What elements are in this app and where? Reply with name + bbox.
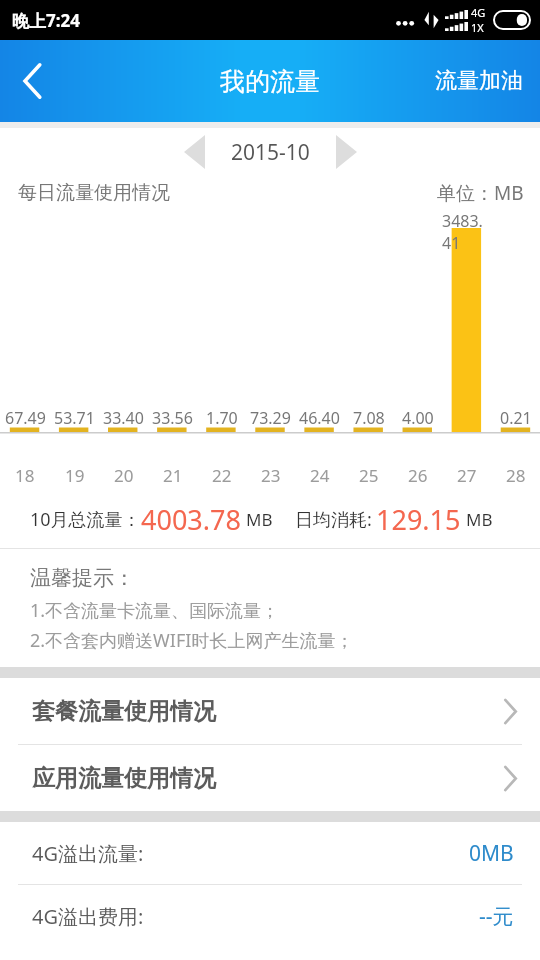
staticText: 4003.78 — [141, 501, 241, 538]
staticText: 23 — [261, 464, 281, 487]
staticText: 我的流量 — [220, 66, 320, 97]
button[interactable]: 下一月 — [324, 129, 368, 175]
staticText: 套餐流量使用情况 — [32, 697, 216, 726]
staticText: 46.40 — [299, 407, 340, 429]
staticText: 4G溢出费用: — [32, 903, 144, 930]
staticText: 19 — [65, 464, 85, 487]
button[interactable]: 返回 — [0, 40, 64, 122]
staticText: 67.49 — [5, 407, 46, 429]
button[interactable]: 套餐流量使用情况 — [0, 678, 540, 744]
staticText: 晚上7:24 — [12, 9, 80, 32]
staticText: 4G溢出流量: — [32, 840, 144, 867]
button[interactable]: 应用流量使用情况 — [0, 745, 540, 811]
staticText: 1X — [471, 20, 484, 35]
staticText: 温馨提示： — [30, 565, 135, 591]
staticText: 18 — [15, 464, 35, 487]
staticText: --元 — [479, 902, 514, 931]
staticText: 7.08 — [353, 407, 385, 429]
staticText: 33.56 — [152, 407, 193, 429]
staticText: 单位：MB — [437, 180, 524, 206]
staticText: 2.不含套内赠送WIFI时长上网产生流量； — [30, 628, 354, 653]
staticText: 21 — [163, 464, 183, 487]
staticText: 2015-10 — [231, 138, 310, 167]
staticText: 20 — [114, 464, 134, 487]
staticText: 28 — [506, 464, 526, 487]
staticText: 3483.41 — [442, 210, 491, 254]
staticText: 每日流量使用情况 — [18, 181, 170, 205]
staticText: 73.29 — [250, 407, 291, 429]
staticText: 4.00 — [402, 407, 434, 429]
staticText: 0.21 — [500, 407, 532, 429]
staticText: 流量加油 — [435, 67, 523, 95]
staticText: 1.70 — [206, 407, 238, 429]
staticText: 33.40 — [103, 407, 144, 429]
staticText: 0MB — [469, 839, 514, 868]
staticText: 26 — [408, 464, 428, 487]
button[interactable]: 流量加油 — [418, 45, 540, 117]
staticText: 53.71 — [54, 407, 95, 429]
staticText: 27 — [457, 464, 477, 487]
staticText: 4G — [471, 5, 486, 20]
staticText: 22 — [212, 464, 232, 487]
staticText: MB — [246, 508, 273, 531]
staticText: MB — [466, 508, 493, 531]
staticText: 1.不含流量卡流量、国际流量； — [30, 598, 280, 623]
staticText: 应用流量使用情况 — [32, 764, 216, 793]
staticText: 日均消耗: — [295, 507, 372, 532]
button[interactable]: 上一月 — [172, 129, 216, 175]
staticText: 129.15 — [376, 501, 461, 538]
staticText: 10月总流量： — [30, 507, 141, 532]
staticText: 24 — [310, 464, 330, 487]
staticText: 25 — [359, 464, 379, 487]
